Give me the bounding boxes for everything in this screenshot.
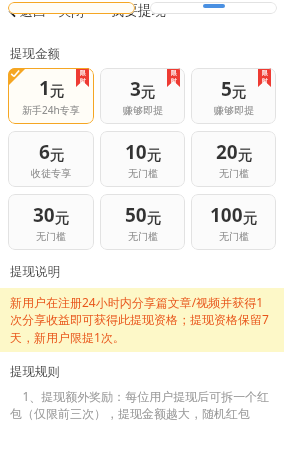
staticText: 限	[80, 69, 86, 77]
staticText: 时	[171, 77, 177, 85]
staticText: 提现规则	[10, 364, 60, 380]
staticText: 限	[171, 69, 177, 77]
button[interactable]: 50	[100, 194, 185, 250]
button[interactable]: 关闭	[54, 0, 88, 22]
button[interactable]: 1	[8, 68, 94, 124]
staticText: 20	[216, 139, 238, 165]
staticText: 元	[147, 210, 161, 228]
staticText: 元	[243, 210, 257, 228]
button[interactable]: 20	[191, 131, 276, 187]
button[interactable]: 30	[8, 194, 94, 250]
button[interactable]: 返回	[4, 0, 50, 22]
button[interactable]: 3	[100, 68, 185, 124]
staticText: 10	[125, 139, 147, 165]
staticText: 元	[232, 84, 246, 102]
staticText: 新手24h专享	[22, 103, 80, 117]
staticText: 限	[262, 69, 268, 77]
staticText: 元	[147, 147, 161, 165]
staticText: 无门槛	[219, 167, 249, 180]
staticText: 无门槛	[219, 230, 249, 243]
staticText: 元	[55, 210, 69, 228]
button[interactable]	[8, 2, 135, 14]
staticText: 元	[238, 147, 252, 165]
staticText: 3	[130, 76, 141, 102]
staticText: 返回	[20, 3, 46, 19]
button[interactable]: 10	[100, 131, 185, 187]
staticText: 时	[262, 77, 268, 85]
button[interactable]: 6	[8, 131, 94, 187]
staticText: 无门槛	[128, 167, 158, 180]
staticText: 100	[210, 202, 243, 228]
staticText: 无门槛	[128, 230, 158, 243]
staticText: 关闭	[58, 3, 84, 19]
staticText: 赚够即提	[123, 104, 163, 117]
staticText: 我要提现	[110, 2, 166, 20]
button[interactable]: 100	[191, 194, 276, 250]
staticText: 元	[50, 147, 64, 165]
staticText: 6	[39, 139, 50, 165]
staticText: 时	[80, 77, 86, 85]
staticText: 5	[221, 76, 232, 102]
staticText: 新用户在注册24小时内分享篇文章/视频并获得1次分享收益即可获得此提现资格；提现…	[10, 294, 274, 346]
staticText: 1	[39, 75, 50, 101]
staticText: 元	[141, 84, 155, 102]
button[interactable]: 5	[191, 68, 276, 124]
staticText: 赚够即提	[214, 104, 254, 117]
staticText: 30	[33, 202, 55, 228]
staticText: 提现说明	[10, 264, 60, 280]
staticText: 无门槛	[36, 230, 66, 243]
button[interactable]	[150, 2, 277, 14]
staticText: 50	[125, 202, 147, 228]
staticText: 收徒专享	[31, 167, 71, 180]
staticText: 提现金额	[10, 46, 60, 62]
staticText: 1、提现额外奖励：每位用户提现后可拆一个红包（仅限前三次），提现金额越大，随机红…	[10, 388, 274, 422]
staticText: 元	[50, 83, 64, 101]
